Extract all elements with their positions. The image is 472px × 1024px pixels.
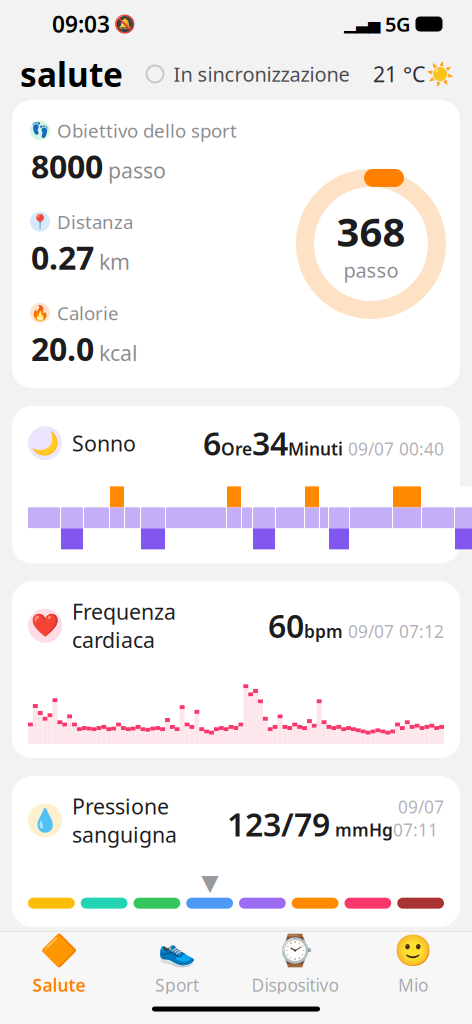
- button[interactable]: 🙂: [354, 925, 472, 1001]
- staticText: mmHg: [330, 818, 393, 841]
- button[interactable]: ❤️: [12, 581, 460, 758]
- staticText: ❤️: [31, 613, 59, 639]
- staticText: 123/79: [227, 803, 330, 845]
- staticText: Minuti: [288, 437, 343, 460]
- staticText: 34: [252, 422, 288, 464]
- staticText: 21 °C: [373, 60, 425, 88]
- button[interactable]: ⌚: [236, 925, 354, 1001]
- staticText: 09/07 00:40: [343, 437, 444, 460]
- staticText: salute: [20, 52, 123, 96]
- button[interactable]: 21 °C: [373, 60, 472, 88]
- staticText: ☀️: [426, 61, 454, 87]
- staticText: Dispositivo: [251, 973, 338, 996]
- staticText: ▼: [201, 870, 218, 895]
- button[interactable]: 👣: [12, 100, 460, 388]
- staticText: 🔕: [114, 14, 136, 34]
- staticText: 0.27: [31, 236, 94, 279]
- staticText: ▁▃▅: [344, 15, 380, 33]
- staticText: 368: [336, 205, 405, 258]
- staticText: Mio: [398, 973, 428, 996]
- staticText: 👣: [31, 122, 49, 139]
- staticText: 🔥: [31, 305, 49, 321]
- staticText: Sonno: [72, 429, 136, 457]
- staticText: 💧: [31, 807, 59, 833]
- staticText: 👟: [158, 933, 196, 968]
- staticText: 09/07 07:12: [343, 620, 444, 643]
- button[interactable]: 👟: [118, 925, 236, 1001]
- staticText: Obiettivo dello sport: [57, 118, 237, 143]
- staticText: 🔶: [40, 933, 78, 968]
- staticText: Calorie: [57, 301, 119, 325]
- staticText: Sport: [155, 973, 199, 996]
- staticText: Distanza: [57, 209, 133, 234]
- staticText: kcal: [99, 339, 138, 367]
- staticText: ⌚: [276, 933, 314, 968]
- staticText: Frequenza cardiaca: [72, 597, 176, 654]
- staticText: Pressione sanguigna: [72, 792, 177, 849]
- staticText: 09/07 07:11: [393, 795, 444, 841]
- staticText: 📍: [31, 213, 49, 230]
- staticText: 60: [268, 604, 304, 647]
- staticText: 🌙: [31, 430, 59, 456]
- staticText: 09:03: [52, 9, 110, 39]
- staticText: 5G: [385, 11, 411, 37]
- button[interactable]: 🔶: [0, 925, 118, 1001]
- staticText: bpm: [304, 620, 343, 643]
- staticText: 20.0: [31, 327, 94, 370]
- button[interactable]: 💧: [12, 776, 460, 927]
- staticText: 8000: [31, 145, 103, 187]
- staticText: Salute: [32, 973, 85, 996]
- button[interactable]: 🌙: [12, 406, 460, 563]
- staticText: 🙂: [394, 933, 432, 968]
- staticText: passo: [108, 156, 166, 184]
- staticText: In sincronizzazione: [173, 61, 349, 87]
- staticText: 6: [203, 422, 221, 464]
- staticText: passo: [343, 257, 398, 283]
- staticText: Ore: [221, 437, 252, 460]
- staticText: km: [99, 247, 130, 276]
